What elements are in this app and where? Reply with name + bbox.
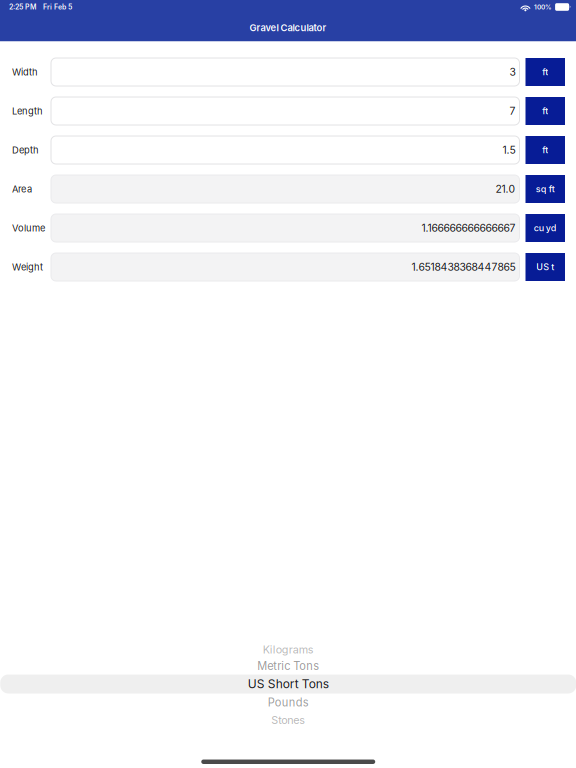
- button[interactable]: ft: [525, 136, 565, 164]
- staticText: 2:25 PM: [9, 3, 37, 11]
- staticText: Fri Feb 5: [43, 3, 72, 11]
- staticText: Pounds: [268, 696, 309, 709]
- button[interactable]: cu yd: [525, 214, 565, 242]
- button[interactable]: 1.166666666666667: [51, 214, 519, 242]
- button[interactable]: Metric Tons: [0, 657, 576, 674]
- button[interactable]: US Short Tons: [6, 674, 570, 693]
- staticText: Gravel Calculator: [249, 22, 326, 33]
- staticText: Length: [12, 105, 43, 117]
- staticText: ft: [542, 105, 548, 116]
- button[interactable]: 7: [51, 97, 519, 125]
- staticText: Metric Tons: [257, 659, 319, 673]
- button[interactable]: 21.0: [51, 175, 519, 203]
- staticText: US t: [536, 261, 554, 272]
- staticText: 7: [509, 105, 515, 117]
- button[interactable]: sq ft: [525, 175, 565, 203]
- staticText: 21.0: [495, 183, 515, 195]
- staticText: Weight: [12, 261, 43, 273]
- staticText: cu yd: [534, 222, 557, 233]
- staticText: Kilograms: [263, 643, 314, 656]
- staticText: Width: [12, 66, 38, 78]
- button[interactable]: 1.5: [51, 136, 519, 164]
- staticText: 100%: [534, 3, 552, 11]
- button[interactable]: 1.6518438368447865: [51, 253, 519, 281]
- staticText: Volume: [12, 222, 45, 234]
- staticText: sq ft: [536, 183, 555, 194]
- button[interactable]: Pounds: [0, 693, 576, 711]
- staticText: 1.166666666666667: [421, 222, 515, 234]
- staticText: Depth: [12, 144, 39, 156]
- button[interactable]: ft: [525, 97, 565, 125]
- staticText: Area: [12, 183, 32, 195]
- staticText: Stones: [271, 713, 305, 727]
- staticText: US Short Tons: [248, 677, 329, 691]
- staticText: 1.6518438368447865: [411, 261, 515, 273]
- staticText: 3: [509, 66, 515, 78]
- button[interactable]: 3: [51, 58, 519, 86]
- staticText: 1.5: [502, 144, 515, 156]
- button[interactable]: Kilograms: [0, 641, 576, 657]
- button[interactable]: US t: [525, 253, 565, 281]
- staticText: ft: [542, 66, 548, 77]
- staticText: ft: [542, 144, 548, 155]
- button[interactable]: ft: [525, 58, 565, 86]
- button[interactable]: Stones: [0, 711, 576, 728]
